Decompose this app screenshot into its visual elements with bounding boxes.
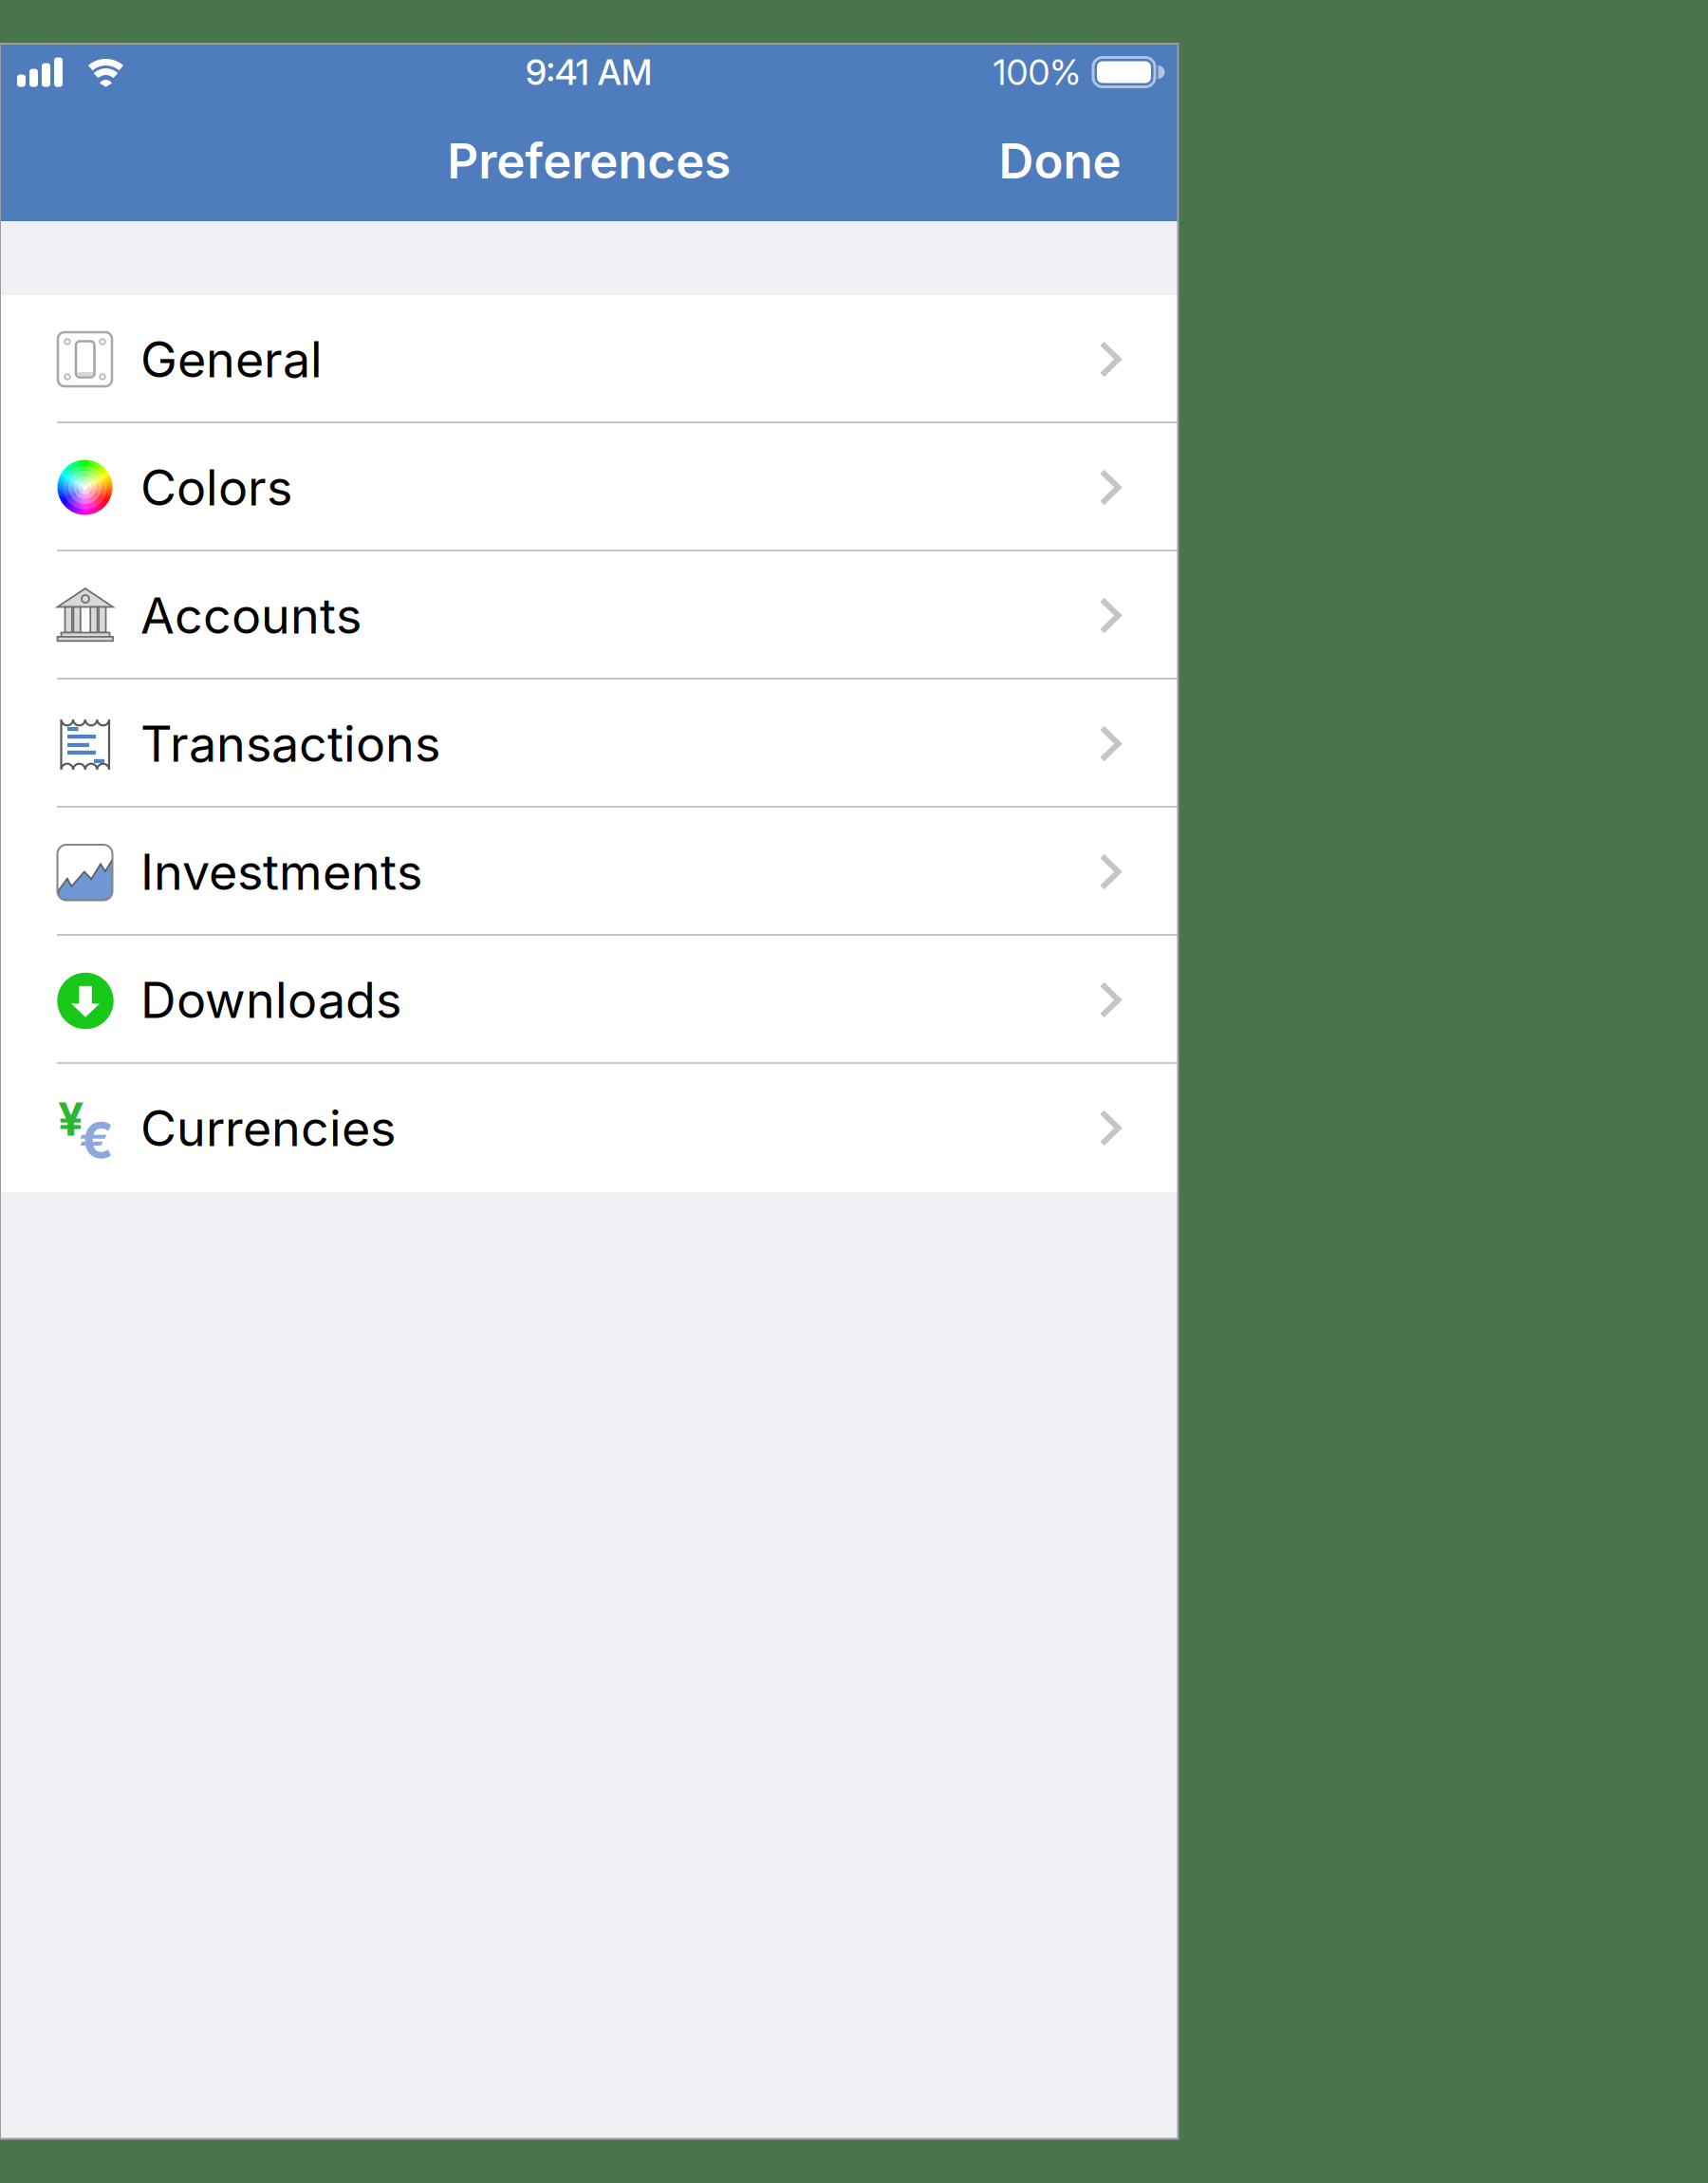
button[interactable]: General (0, 295, 1178, 423)
button[interactable]: Downloads (0, 936, 1178, 1064)
staticText: General (140, 329, 323, 389)
button[interactable]: ¥ (0, 1064, 1178, 1192)
staticText: € (79, 1109, 114, 1171)
staticText: 9:41 AM (525, 51, 653, 93)
button[interactable]: Investments (0, 808, 1178, 936)
staticText: Investments (140, 842, 422, 902)
button[interactable]: Colors (0, 423, 1178, 551)
staticText: Currencies (140, 1098, 396, 1158)
staticText: Colors (140, 457, 292, 517)
staticText: Accounts (140, 586, 362, 645)
staticText: ¥ (58, 1091, 84, 1147)
staticText: 100% (993, 51, 1080, 93)
staticText: Done (999, 132, 1121, 190)
button[interactable]: Accounts (0, 551, 1178, 680)
staticText: Downloads (140, 970, 401, 1030)
button[interactable]: Transactions (0, 680, 1178, 808)
staticText: Transactions (140, 714, 440, 773)
staticText: Preferences (447, 132, 731, 190)
button[interactable]: Done (999, 132, 1121, 190)
